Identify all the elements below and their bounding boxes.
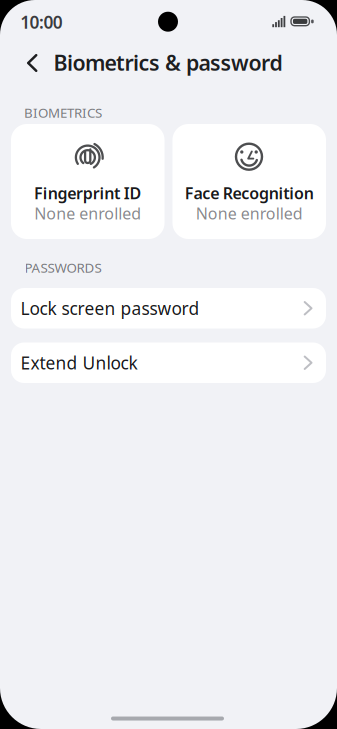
staticText: None enrolled <box>196 203 303 224</box>
button[interactable]: Face Recognition <box>172 124 326 239</box>
staticText: 10:00 <box>20 10 63 33</box>
staticText: Fingerprint ID <box>34 182 141 204</box>
staticText: None enrolled <box>34 203 141 224</box>
staticText: Extend Unlock <box>20 351 137 374</box>
button[interactable]: Extend Unlock <box>11 342 326 383</box>
staticText: BIOMETRICS <box>24 104 102 121</box>
button[interactable]: Fingerprint ID <box>11 124 164 239</box>
staticText: Lock screen password <box>20 297 199 320</box>
staticText: Biometrics & password <box>53 48 282 77</box>
staticText: PASSWORDS <box>24 259 101 276</box>
button[interactable]: Back <box>19 46 46 80</box>
staticText: Face Recognition <box>185 182 314 204</box>
button[interactable]: Lock screen password <box>11 288 326 328</box>
